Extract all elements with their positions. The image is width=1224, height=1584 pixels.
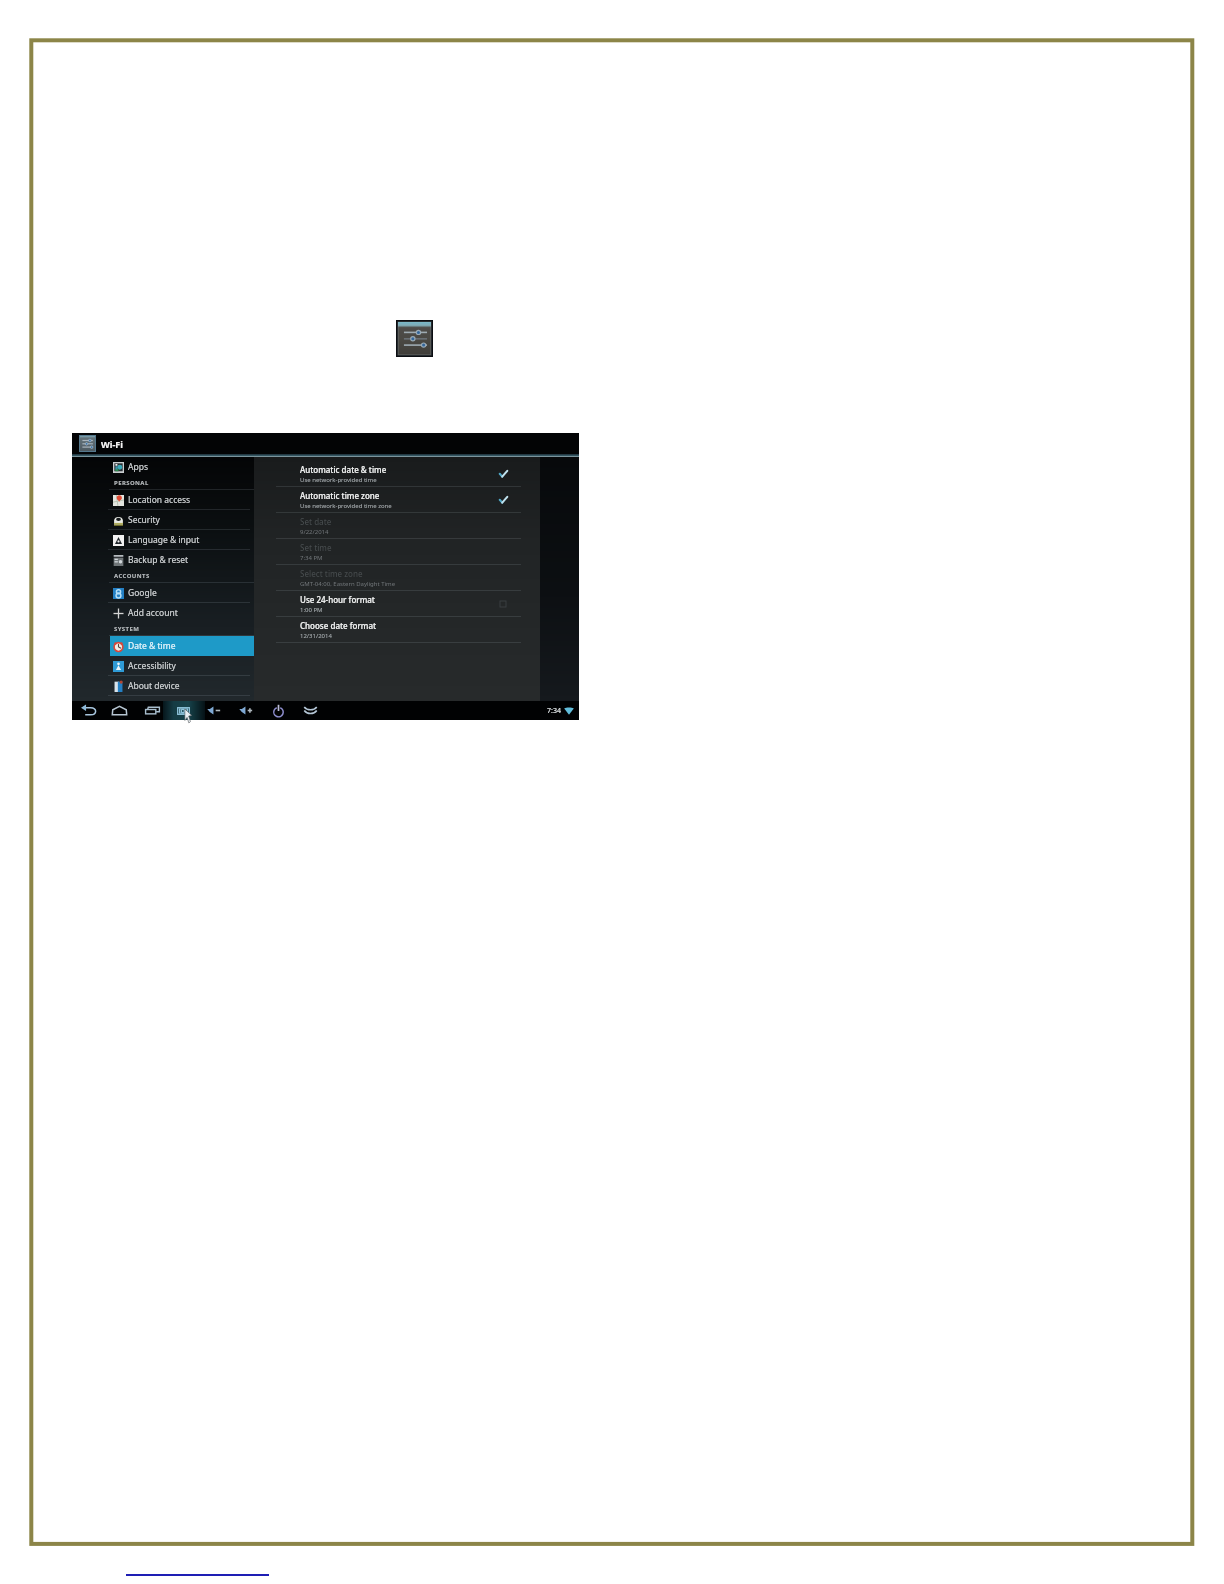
button[interactable]: Language & input (113, 530, 254, 550)
button[interactable]: Set date (276, 513, 521, 539)
staticText: Automatic time zone (300, 490, 380, 501)
button[interactable]: Select time zone (276, 565, 521, 591)
staticText: Backup & reset (128, 554, 189, 566)
staticText: About device (128, 680, 180, 692)
button[interactable]: Accessibility (113, 656, 254, 676)
button[interactable]: Security (113, 510, 254, 530)
button[interactable]: Hide navigation bar (296, 701, 324, 720)
button[interactable]: Settings app icon (396, 320, 433, 357)
button[interactable]: Volume up (232, 701, 260, 720)
staticText: ACCOUNTS (114, 572, 150, 580)
staticText: Automatic date & time (300, 464, 387, 475)
staticText: Location access (128, 494, 191, 506)
button[interactable]: Settings (79, 435, 96, 452)
staticText: 7:34 PM (300, 554, 323, 562)
button[interactable]: Add account (113, 603, 254, 623)
staticText: Security (128, 514, 160, 526)
button[interactable]: Choose date format (276, 617, 521, 643)
button[interactable]: Apps (113, 457, 254, 477)
button[interactable]: Automatic time zone (276, 487, 521, 513)
button[interactable]: Screenshot (169, 701, 197, 720)
button[interactable]: Google (113, 583, 254, 603)
staticText: PERSONAL (114, 479, 149, 487)
button[interactable]: Home (105, 701, 133, 720)
staticText: 7:34 (547, 706, 561, 716)
staticText: Choose date format (300, 620, 377, 631)
button[interactable]: Location access (113, 490, 254, 510)
staticText: 9/22/2014 (300, 528, 329, 536)
staticText: 1:00 PM (300, 606, 323, 614)
button[interactable]: Recent apps (138, 701, 166, 720)
button[interactable]: Volume down (200, 701, 228, 720)
button[interactable]: Date & time (113, 636, 254, 656)
button[interactable]: About device (113, 676, 254, 696)
button[interactable]: Set time (276, 539, 521, 565)
staticText: GMT-04:00, Eastern Daylight Time (300, 580, 396, 588)
staticText: Select time zone (300, 568, 363, 579)
staticText: Add account (128, 607, 178, 619)
staticText: Use network-provided time zone (300, 502, 392, 510)
staticText: Use 24-hour format (300, 594, 375, 605)
button[interactable]: Automatic date & time (276, 461, 521, 487)
staticText: Set date (300, 516, 332, 527)
staticText: Set time (300, 542, 332, 553)
staticText: Wi-Fi (101, 438, 123, 450)
button[interactable]: Back (74, 701, 102, 720)
button[interactable]: Backup & reset (113, 550, 254, 570)
staticText: Google (128, 587, 157, 599)
staticText: SYSTEM (114, 625, 140, 633)
staticText: Accessibility (128, 660, 176, 672)
staticText: Date & time (128, 640, 176, 652)
staticText: 12/31/2014 (300, 632, 332, 640)
button[interactable]: Use 24-hour format (276, 591, 521, 617)
staticText: Language & input (128, 534, 200, 546)
staticText: Use network-provided time (300, 476, 377, 484)
button[interactable]: Power (264, 701, 292, 720)
staticText: Apps (128, 461, 148, 473)
